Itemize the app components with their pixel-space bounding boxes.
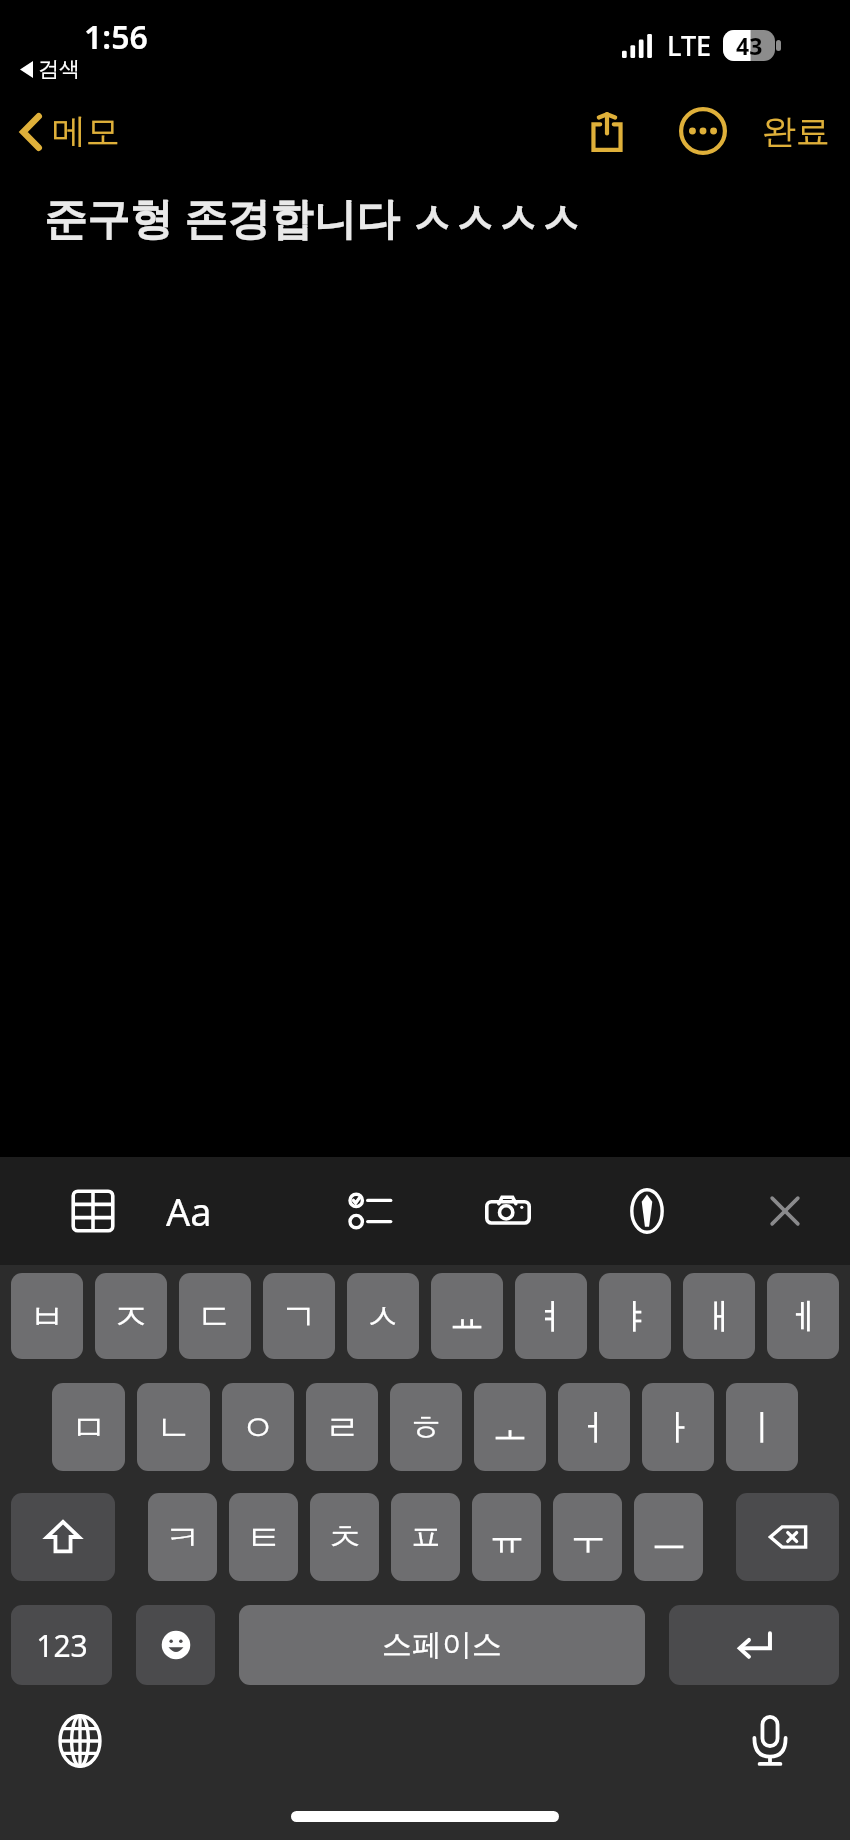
button[interactable]: Dictation	[732, 1703, 808, 1779]
button[interactable]: Markup	[612, 1169, 682, 1253]
staticText: ㄹ	[324, 1405, 360, 1450]
staticText: ㄷ	[197, 1294, 233, 1339]
staticText: ㅈ	[113, 1294, 149, 1339]
button[interactable]: ㅓ	[558, 1383, 630, 1471]
button[interactable]: Back to 검색	[20, 56, 80, 82]
button[interactable]: ㅁ	[52, 1383, 125, 1471]
button[interactable]: ㄷ	[179, 1273, 251, 1359]
button[interactable]: Delete	[736, 1493, 839, 1581]
button[interactable]: ㅗ	[474, 1383, 546, 1471]
staticText: 1:56	[84, 15, 148, 59]
button[interactable]: ㅍ	[391, 1493, 460, 1581]
staticText: ㅣ	[744, 1405, 780, 1450]
button[interactable]: ㅌ	[229, 1493, 298, 1581]
staticText: Aa	[166, 1185, 212, 1237]
button[interactable]: ㅣ	[726, 1383, 798, 1471]
button[interactable]: ㅅ	[347, 1273, 419, 1359]
button[interactable]: 123	[11, 1605, 112, 1685]
staticText: 준구형 존경합니다 ㅅㅅㅅㅅ	[44, 188, 583, 247]
staticText: 검색	[38, 56, 80, 82]
staticText: ㅌ	[246, 1515, 282, 1560]
button[interactable]: ㅋ	[148, 1493, 217, 1581]
staticText: ㅍ	[408, 1515, 444, 1560]
button[interactable]: ㅇ	[222, 1383, 294, 1471]
button[interactable]: ㅊ	[310, 1493, 379, 1581]
staticText: ㅑ	[617, 1294, 653, 1339]
staticText: ㅎ	[408, 1405, 444, 1450]
button[interactable]: Next keyboard	[42, 1703, 118, 1779]
button[interactable]: Shift	[11, 1493, 115, 1581]
button[interactable]: ㅈ	[95, 1273, 167, 1359]
button[interactable]: ㅛ	[431, 1273, 503, 1359]
button[interactable]: ㅎ	[390, 1383, 462, 1471]
button[interactable]: 완료	[756, 102, 836, 161]
button[interactable]: Emoji	[136, 1605, 215, 1685]
button[interactable]: ㅕ	[515, 1273, 587, 1359]
staticText: 메모	[52, 110, 120, 153]
button[interactable]: ㅐ	[683, 1273, 755, 1359]
staticText: ㅏ	[660, 1405, 696, 1450]
staticText: ㅋ	[165, 1515, 201, 1560]
staticText: ㅐ	[701, 1294, 737, 1339]
staticText: ㄱ	[281, 1294, 317, 1339]
button[interactable]: ㄹ	[306, 1383, 378, 1471]
staticText: ㅜ	[570, 1515, 606, 1560]
staticText: ㅔ	[785, 1294, 821, 1339]
staticText: LTE	[667, 27, 712, 64]
staticText: ㅂ	[29, 1294, 65, 1339]
button[interactable]: 스페이스	[239, 1605, 645, 1685]
button[interactable]: ㅑ	[599, 1273, 671, 1359]
button[interactable]: Return	[669, 1605, 839, 1685]
staticText: ㅡ	[651, 1515, 687, 1560]
button[interactable]: Share	[576, 100, 638, 162]
button[interactable]: ㅠ	[472, 1493, 541, 1581]
staticText: ㅕ	[533, 1294, 569, 1339]
staticText: ㅅ	[365, 1294, 401, 1339]
button[interactable]: ㄴ	[137, 1383, 210, 1471]
button[interactable]: 메모	[12, 104, 128, 159]
staticText: ㅓ	[576, 1405, 612, 1450]
staticText: ㅗ	[492, 1405, 528, 1450]
button[interactable]: ㄱ	[263, 1273, 335, 1359]
button[interactable]: ㅂ	[11, 1273, 83, 1359]
staticText: ㅁ	[71, 1405, 107, 1450]
button[interactable]: Camera	[473, 1169, 543, 1253]
button[interactable]: Checklist	[335, 1169, 405, 1253]
staticText: 스페이스	[382, 1626, 502, 1664]
button[interactable]: ㅔ	[767, 1273, 839, 1359]
staticText: ㅇ	[240, 1405, 276, 1450]
button[interactable]: ㅡ	[634, 1493, 703, 1581]
staticText: ㅛ	[449, 1294, 485, 1339]
staticText: 43	[736, 30, 763, 61]
button[interactable]: ㅏ	[642, 1383, 714, 1471]
button[interactable]: Format	[196, 1169, 266, 1253]
button[interactable]: Close keyboard	[750, 1169, 820, 1253]
button[interactable]: More options	[672, 100, 734, 162]
staticText: 123	[36, 1625, 88, 1666]
staticText: ㅊ	[327, 1515, 363, 1560]
staticText: 완료	[762, 110, 830, 153]
button[interactable]: Table	[58, 1169, 128, 1253]
staticText: ㄴ	[156, 1405, 192, 1450]
button[interactable]: ㅜ	[553, 1493, 622, 1581]
staticText: ㅠ	[489, 1515, 525, 1560]
